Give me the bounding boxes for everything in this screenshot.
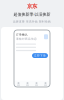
staticText: 请核对商品信息 — [16, 37, 37, 41]
staticText: 立即下单 — [34, 54, 46, 57]
staticText: 京东 — [27, 3, 37, 10]
staticText: 超值换新季·以旧换新 — [13, 12, 50, 17]
staticText: 品牌直降 至高补贴 限时抢购 — [13, 20, 51, 23]
staticText: 订单确认 — [16, 33, 28, 36]
